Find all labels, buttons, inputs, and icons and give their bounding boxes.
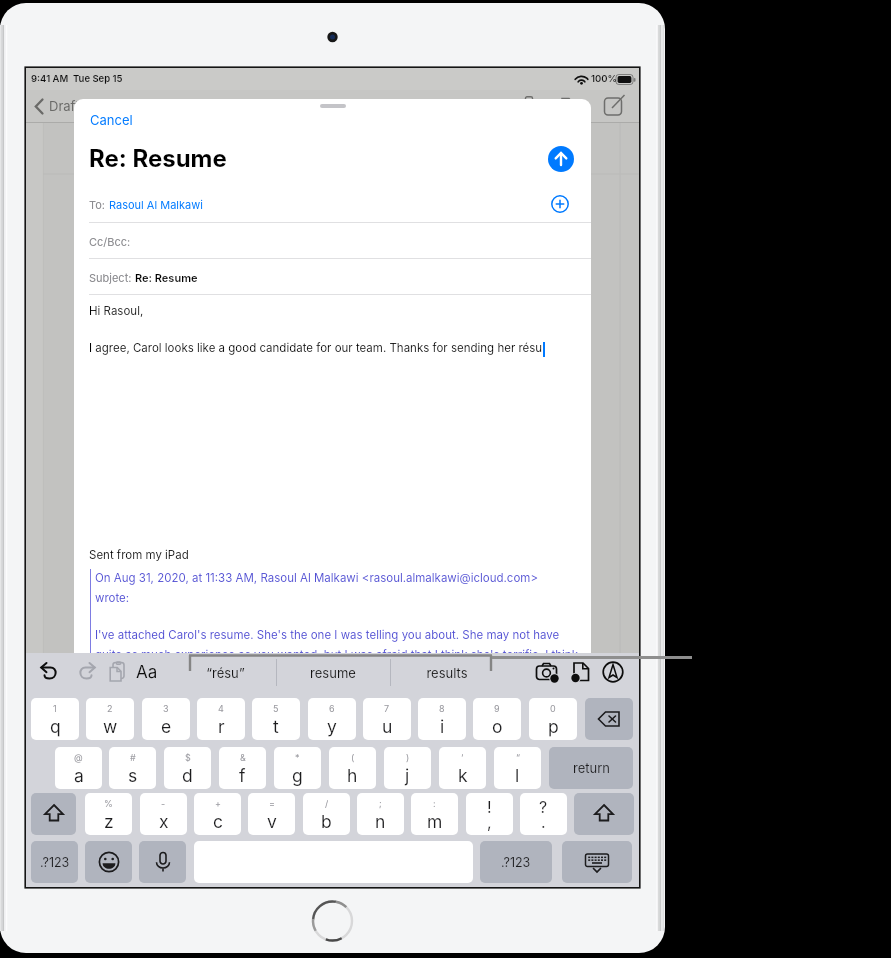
staticText: k: [458, 765, 468, 786]
button[interactable]: Compose: [601, 92, 627, 118]
button[interactable]: !: [466, 793, 513, 835]
button[interactable]: Drafts: [31, 92, 89, 120]
button[interactable]: *: [274, 747, 321, 789]
staticText: o: [492, 716, 503, 737]
staticText: 3: [163, 703, 169, 714]
staticText: h: [347, 765, 358, 786]
button[interactable]: ?: [520, 793, 567, 835]
button[interactable]: To:: [74, 186, 591, 222]
staticText: .?123: [501, 855, 531, 870]
button[interactable]: “: [494, 747, 541, 789]
button[interactable]: #: [109, 747, 156, 789]
button[interactable]: Subject:: [74, 259, 591, 295]
button[interactable]: Cc/Bcc:: [74, 223, 591, 259]
staticText: 5: [273, 703, 279, 714]
button[interactable]: Shift: [31, 793, 76, 835]
button[interactable]: Hide keyboard: [562, 841, 632, 883]
button[interactable]: 7: [363, 698, 411, 740]
button[interactable]: “résu”: [171, 653, 279, 692]
staticText: y: [327, 716, 337, 737]
staticText: 1: [53, 703, 57, 714]
staticText: wrote:: [95, 591, 130, 605]
staticText: 4: [218, 703, 224, 714]
button[interactable]: .?123: [480, 841, 552, 883]
button[interactable]: Markup: [600, 659, 626, 685]
staticText: v: [267, 811, 277, 832]
staticText: resume: [310, 665, 356, 681]
staticText: (: [351, 752, 355, 763]
button[interactable]: 5: [252, 698, 300, 740]
button[interactable]: Send: [548, 146, 574, 172]
staticText: n: [375, 811, 386, 832]
button[interactable]: 9: [473, 698, 521, 740]
staticText: w: [103, 716, 118, 737]
button[interactable]: Emoji: [85, 841, 132, 883]
staticText: &: [240, 752, 246, 763]
button[interactable]: ‘: [439, 747, 486, 789]
button[interactable]: Shift: [574, 793, 634, 835]
staticText: 6: [329, 703, 335, 714]
button[interactable]: %: [85, 793, 132, 835]
button[interactable]: +: [194, 793, 241, 835]
button[interactable]: /: [303, 793, 350, 835]
staticText: 100%: [591, 73, 618, 84]
button[interactable]: results: [390, 653, 504, 692]
staticText: p: [548, 716, 559, 737]
button[interactable]: =: [248, 793, 295, 835]
button[interactable]: Insert document: [568, 659, 594, 685]
staticText: quite as much experience as you wanted, …: [95, 648, 578, 655]
staticText: ,: [487, 812, 492, 831]
staticText: On Aug 31, 2020, at 11:33 AM, Rasoul Al …: [95, 571, 538, 585]
button[interactable]: 4: [197, 698, 245, 740]
button[interactable]: Paste: [104, 659, 130, 685]
button[interactable]: .?123: [31, 841, 78, 883]
staticText: Re: Resume: [89, 144, 227, 173]
staticText: e: [161, 716, 172, 737]
button[interactable]: Aa: [131, 657, 163, 687]
staticText: a: [74, 765, 84, 786]
button[interactable]: Dictation: [139, 841, 186, 883]
button[interactable]: $: [164, 747, 211, 789]
staticText: $: [185, 752, 191, 763]
button[interactable]: ;: [357, 793, 404, 835]
button[interactable]: 0: [529, 698, 577, 740]
button[interactable]: Undo: [38, 659, 64, 685]
staticText: I've attached Carol's resume. She's the …: [95, 628, 560, 642]
button[interactable]: Backspace: [585, 698, 633, 740]
staticText: /: [325, 798, 329, 809]
button[interactable]: Delete: [516, 92, 542, 118]
staticText: z: [104, 811, 114, 832]
button[interactable]: Redo: [72, 659, 98, 685]
button[interactable]: -: [140, 793, 187, 835]
staticText: !: [487, 797, 492, 816]
button[interactable]: 8: [418, 698, 466, 740]
button[interactable]: &: [219, 747, 266, 789]
staticText: Re: Resume: [135, 271, 198, 284]
staticText: u: [382, 716, 393, 737]
button[interactable]: (: [329, 747, 376, 789]
button[interactable]: Add contact: [550, 194, 570, 214]
staticText: g: [292, 765, 303, 786]
staticText: :: [433, 798, 436, 809]
button[interactable]: resume: [276, 653, 390, 692]
staticText: Subject:: [89, 271, 135, 284]
button[interactable]: 2: [86, 698, 134, 740]
button[interactable]: Move to folder: [559, 92, 585, 118]
button[interactable]: ): [384, 747, 431, 789]
staticText: s: [128, 765, 138, 786]
button[interactable]: @: [55, 747, 102, 789]
staticText: 7: [384, 703, 390, 714]
button[interactable]: Cancel: [82, 109, 141, 131]
button[interactable]: 3: [142, 698, 190, 740]
button[interactable]: Insert photo: [535, 659, 561, 685]
staticText: Hi Rasoul,: [89, 304, 144, 318]
staticText: Cancel: [90, 112, 133, 128]
staticText: To:: [89, 198, 109, 211]
button[interactable]: 1: [31, 698, 79, 740]
button[interactable]: return: [549, 747, 633, 789]
staticText: @: [74, 752, 83, 763]
staticText: 9: [494, 703, 500, 714]
button[interactable]: 6: [308, 698, 356, 740]
button[interactable]: :: [411, 793, 458, 835]
